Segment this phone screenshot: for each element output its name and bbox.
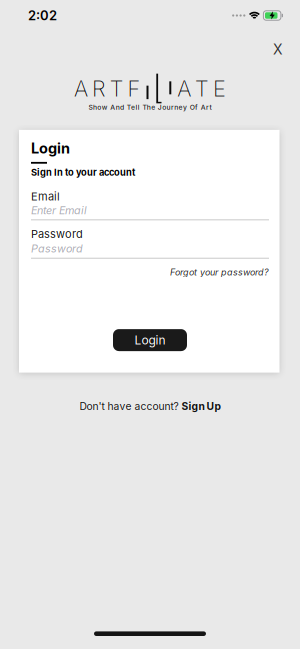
staticText: T: [110, 75, 124, 102]
button[interactable]: Close: [273, 41, 300, 58]
staticText: A: [177, 75, 191, 102]
staticText: Show And Tell The Journey Of Art: [89, 103, 211, 111]
staticText: F: [127, 75, 140, 102]
staticText: Login: [31, 139, 70, 157]
button[interactable]: Sign Up: [181, 400, 220, 413]
button[interactable]: Login: [113, 329, 187, 351]
staticText: X: [273, 41, 283, 58]
staticText: Forgot your password?: [170, 267, 269, 278]
staticText: A: [74, 75, 88, 102]
button[interactable]: Forgot your password?: [170, 267, 269, 278]
staticText: Login: [134, 333, 165, 347]
staticText: Password: [31, 227, 83, 241]
staticText: R: [92, 75, 106, 102]
staticText: Don't have account?: [79, 400, 181, 413]
staticText: Sign In to your account: [31, 167, 135, 178]
staticText: Enter Email: [31, 204, 87, 217]
staticText: Email: [31, 190, 60, 203]
staticText: Password: [31, 242, 83, 255]
staticText: 2:02: [28, 8, 57, 23]
staticText: E: [213, 75, 226, 102]
staticText: Sign Up: [181, 400, 220, 413]
staticText: T: [195, 75, 209, 102]
